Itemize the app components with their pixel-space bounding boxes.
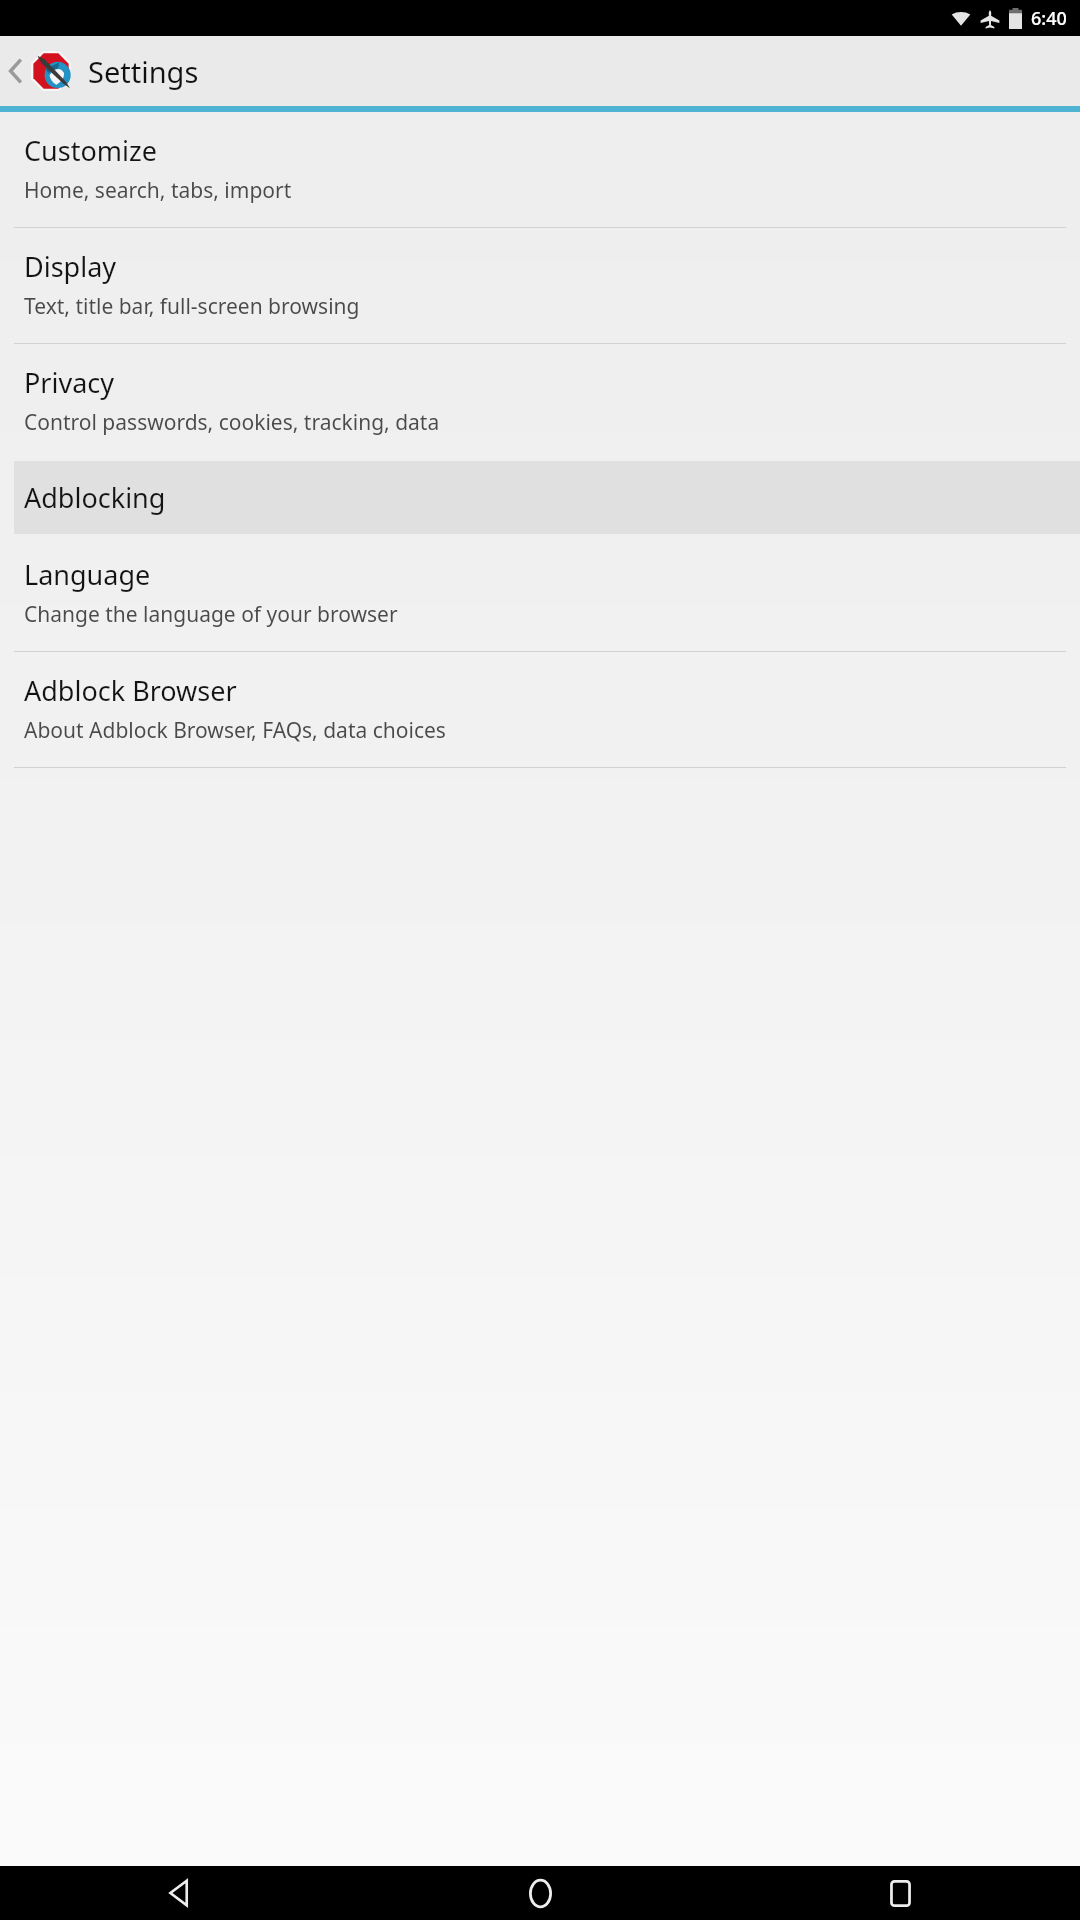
button[interactable]: Recent apps: [720, 1866, 1080, 1920]
button[interactable]: Home: [360, 1866, 720, 1920]
staticText: Display: [24, 248, 117, 285]
staticText: Change the language of your browser: [24, 600, 398, 629]
staticText: Settings: [88, 52, 199, 91]
staticText: Home, search, tabs, import: [24, 176, 292, 205]
button[interactable]: Display: [0, 228, 1080, 343]
button[interactable]: Adblocking: [14, 461, 1080, 534]
staticText: 6:40: [1031, 6, 1067, 31]
staticText: About Adblock Browser, FAQs, data choice…: [24, 716, 446, 745]
staticText: Privacy: [24, 364, 115, 401]
button[interactable]: Customize: [0, 112, 1080, 227]
staticText: Language: [24, 556, 151, 593]
button[interactable]: Language: [0, 536, 1080, 651]
button[interactable]: Navigate up: [0, 36, 78, 106]
staticText: Text, title bar, full-screen browsing: [24, 292, 360, 321]
button[interactable]: Adblock Browser: [0, 652, 1080, 767]
staticText: Adblock Browser: [24, 672, 237, 709]
staticText: Adblocking: [24, 479, 166, 516]
staticText: Control passwords, cookies, tracking, da…: [24, 408, 440, 437]
button[interactable]: Back: [0, 1866, 360, 1920]
staticText: Customize: [24, 132, 157, 169]
button[interactable]: Privacy: [0, 344, 1080, 459]
